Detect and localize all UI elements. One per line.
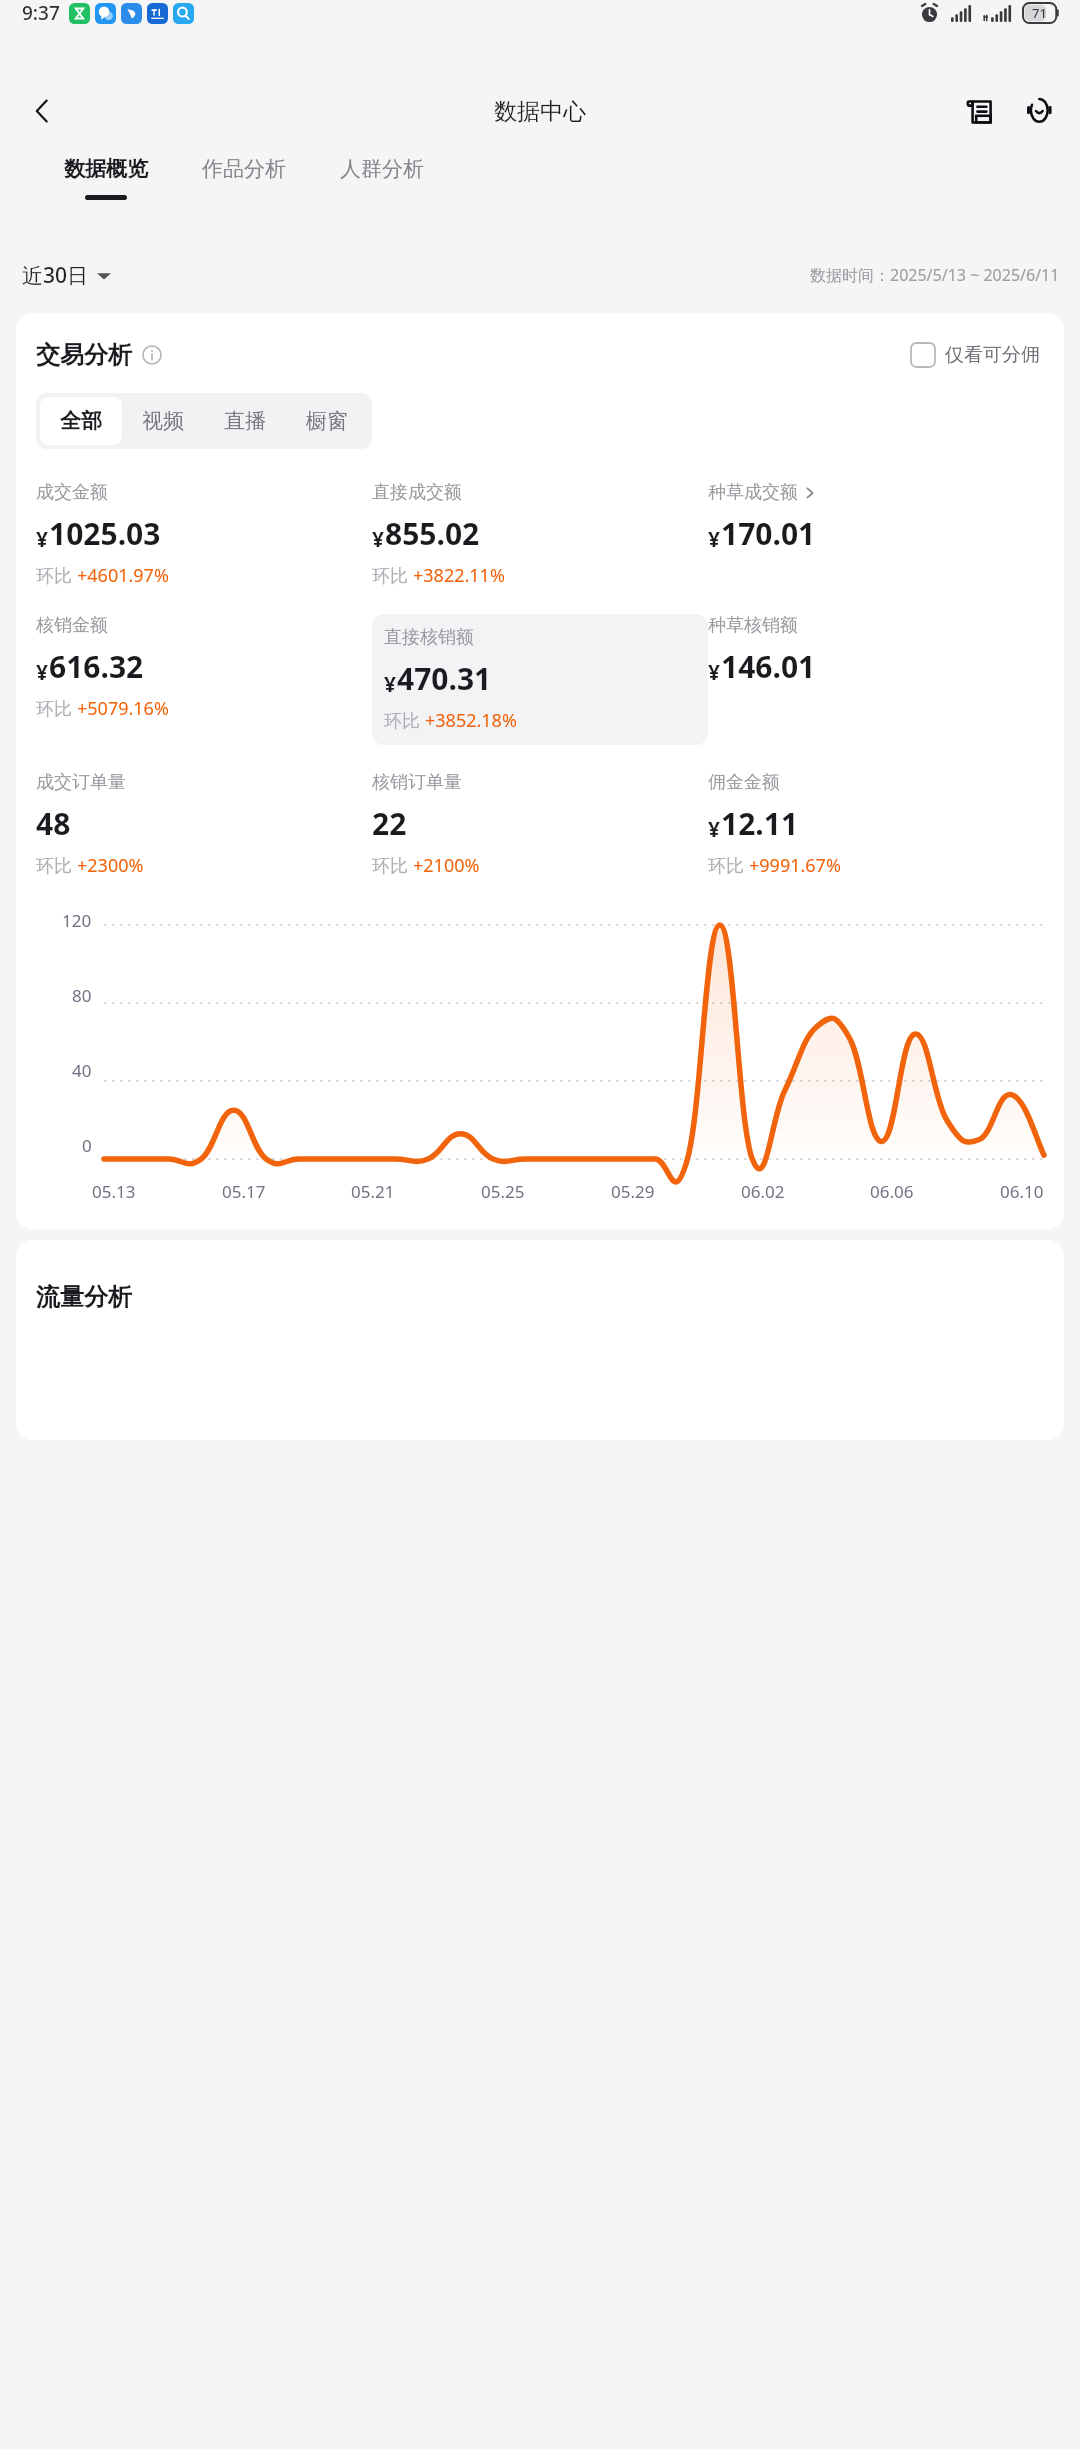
staticText: 05.13 (92, 1180, 136, 1203)
staticText: 05.25 (481, 1180, 525, 1203)
button[interactable]: 核销订单量 (372, 771, 708, 878)
staticText: 核销订单量 (372, 771, 462, 794)
staticText: 470.31 (397, 658, 492, 699)
button[interactable]: 佣金金额 (708, 771, 1044, 878)
staticText: 1025.03 (49, 513, 161, 554)
staticText: 核销金额 (36, 614, 108, 637)
staticText: 05.17 (222, 1180, 266, 1203)
staticText: 橱窗 (306, 408, 348, 434)
button[interactable]: 直播 (204, 397, 286, 445)
staticText: 流量分析 (36, 1282, 132, 1312)
staticText: 环比 (372, 853, 413, 878)
staticText: 佣金金额 (708, 771, 780, 794)
staticText: 直播 (224, 408, 266, 434)
staticText: 48 (36, 803, 71, 844)
staticText: ¥ (384, 670, 397, 699)
staticText: 近30日 (22, 261, 89, 290)
staticText: +4601.97% (77, 563, 169, 588)
staticText: 120 (62, 909, 92, 932)
staticText: 种草成交额 (708, 481, 798, 504)
staticText: 05.29 (611, 1180, 655, 1203)
staticText: 855.02 (385, 513, 480, 554)
staticText: +5079.16% (77, 696, 169, 721)
staticText: 9:37 (22, 0, 60, 26)
staticText: ¥ (708, 658, 721, 687)
staticText: 人群分析 (340, 156, 424, 182)
staticText: +2300% (77, 853, 144, 878)
button[interactable]: 成交金额 (36, 481, 372, 588)
button[interactable]: Back (14, 83, 70, 139)
button[interactable]: 人群分析 (336, 150, 428, 206)
staticText: 全部 (60, 408, 102, 434)
staticText: 71 (1032, 4, 1047, 22)
staticText: 直接成交额 (372, 481, 462, 504)
button[interactable]: 成交订单量 (36, 771, 372, 878)
staticText: 0 (82, 1134, 92, 1157)
button[interactable]: Customer service (1014, 86, 1064, 136)
staticText: 成交订单量 (36, 771, 126, 794)
button[interactable]: 种草核销额 (708, 614, 1044, 718)
staticText: 作品分析 (202, 156, 286, 182)
staticText: +9991.67% (749, 853, 841, 878)
staticText: 环比 (36, 563, 77, 588)
staticText: 数据时间：2025/5/13 ~ 2025/6/11 (810, 264, 1060, 286)
staticText: +3822.11% (413, 563, 505, 588)
button[interactable]: 作品分析 (198, 150, 290, 206)
button[interactable]: 核销金额 (36, 614, 372, 721)
staticText: 环比 (36, 853, 77, 878)
staticText: 40 (72, 1059, 92, 1082)
staticText: +3852.18% (425, 708, 517, 733)
staticText: 环比 (372, 563, 413, 588)
staticText: 成交金额 (36, 481, 108, 504)
button[interactable]: 近30日 (22, 257, 111, 294)
staticText: 616.32 (49, 646, 144, 687)
staticText: 数据中心 (494, 97, 586, 126)
button[interactable]: Report (956, 86, 1006, 136)
staticText: 06.02 (741, 1180, 785, 1203)
staticText: 环比 (36, 696, 77, 721)
staticText: 交易分析 (36, 340, 132, 370)
staticText: 直接核销额 (384, 626, 474, 649)
staticText: ¥ (36, 658, 49, 687)
button[interactable]: Info (141, 344, 163, 366)
staticText: ¥ (36, 525, 49, 554)
button[interactable]: 数据概览 (60, 150, 152, 206)
button[interactable]: 仅看可分佣 (907, 339, 1044, 371)
staticText: 06.06 (870, 1180, 914, 1203)
button[interactable]: 直接核销额 (372, 614, 708, 745)
staticText: 环比 (708, 853, 749, 878)
staticText: 12.11 (721, 803, 799, 844)
staticText: ¥ (708, 525, 721, 554)
button[interactable]: 全部 (40, 397, 122, 445)
staticText: 170.01 (721, 513, 816, 554)
button[interactable]: 直接成交额 (372, 481, 708, 588)
staticText: 06.10 (1000, 1180, 1044, 1203)
staticText: 种草核销额 (708, 614, 798, 637)
staticText: ¥ (372, 525, 385, 554)
button[interactable]: 视频 (122, 397, 204, 445)
staticText: 环比 (384, 708, 425, 733)
staticText: +2100% (413, 853, 480, 878)
staticText: 数据概览 (64, 156, 148, 182)
button[interactable]: 橱窗 (286, 397, 368, 445)
staticText: 仅看可分佣 (945, 343, 1040, 367)
staticText: ¥ (708, 815, 721, 844)
staticText: 146.01 (721, 646, 816, 687)
staticText: 22 (372, 803, 407, 844)
button[interactable]: 种草成交额 (708, 481, 1044, 585)
staticText: 05.21 (351, 1180, 395, 1203)
staticText: 视频 (142, 408, 184, 434)
staticText: 80 (72, 984, 92, 1007)
